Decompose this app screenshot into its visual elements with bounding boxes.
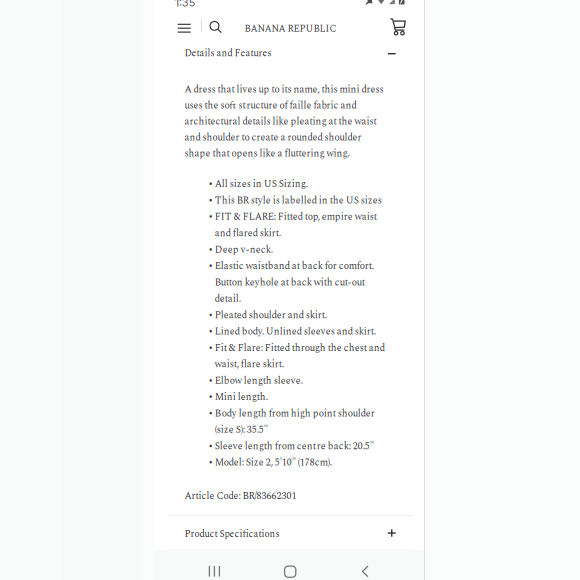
staticText: BANANA REPUBLIC [244,22,336,36]
staticText: • [208,373,213,388]
staticText: Sleeve length from centre back: 20.5" [215,439,374,454]
staticText: 1:35 [175,0,196,9]
staticText: • [208,308,213,323]
staticText: Lined body. Unlined sleeves and skirt. [215,324,376,339]
staticText: • [208,324,213,339]
staticText: Product Specifications [184,527,279,541]
staticText: Deep v-neck. [215,242,273,257]
staticText: • [208,455,213,470]
staticText: • [208,341,213,355]
staticText: Fit & Flare: Fitted through the chest an… [215,341,385,355]
staticText: and shoulder to create a rounded shoulde… [184,130,361,145]
staticText: • [208,210,213,224]
button[interactable]: Home [155,0,184,29]
staticText: • [208,406,213,421]
button[interactable]: Shopping cart [155,0,179,25]
staticText: Model: Size 2, 5'10" (178cm). [215,455,332,470]
button[interactable]: Search [155,0,177,22]
staticText: • [208,259,213,273]
staticText: • [208,177,213,192]
staticText: detail. [215,291,241,306]
button[interactable]: Menu [155,0,178,22]
staticText: and flared skirt. [215,226,281,241]
staticText: This BR style is labelled in the US size… [215,193,382,208]
staticText: FIT & FLARE: Fitted top, empire waist [215,210,377,224]
staticText: architectural details like pleating at t… [184,114,376,129]
staticText: • [208,193,213,208]
staticText: • [208,390,213,404]
staticText: waist, flare skirt. [215,357,284,372]
staticText: Button keyhole at back with cut-out [215,275,365,290]
staticText: Elbow length sleeve. [215,373,303,388]
staticText: • [208,242,213,257]
button[interactable]: Back [155,0,180,30]
staticText: • [208,439,213,454]
staticText: Mini length. [215,390,268,404]
staticText: uses the soft structure of faille fabric… [184,98,356,113]
button[interactable]: Product Specifications [155,0,424,34]
staticText: A dress that lives up to its name, this … [184,82,383,97]
staticText: (size S): 35.5" [215,422,268,437]
button[interactable]: Details and Features [155,0,424,24]
button[interactable]: Recent apps [155,0,184,30]
staticText: All sizes in US Sizing. [215,177,308,192]
staticText: Article Code: BR/83662301 [184,489,296,504]
staticText: Elastic waistband at back for comfort. [215,259,374,273]
staticText: Pleated shoulder and skirt. [215,308,327,323]
staticText: Details and Features [184,46,271,61]
staticText: Body length from high point shoulder [215,406,375,421]
staticText: shape that opens like a fluttering wing. [184,146,349,161]
